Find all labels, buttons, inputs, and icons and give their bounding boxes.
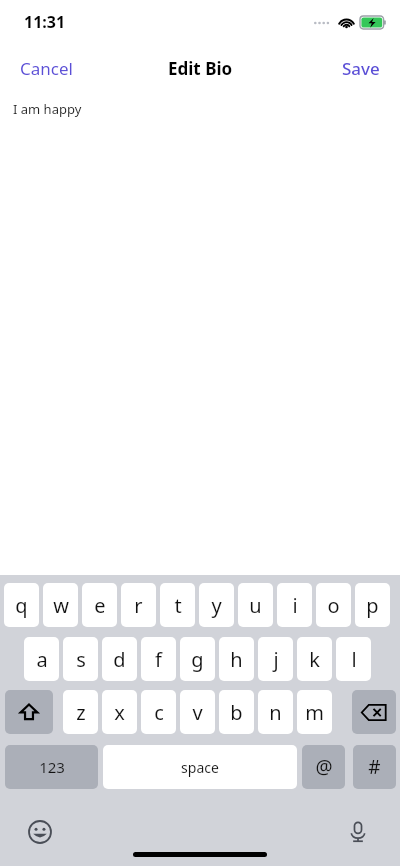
button[interactable]: f (141, 637, 176, 681)
button[interactable]: l (336, 637, 371, 681)
staticText: I am happy (13, 100, 82, 118)
staticText: w (53, 592, 69, 619)
button[interactable]: q (4, 583, 39, 627)
staticText: h (230, 646, 243, 673)
button[interactable]: I am happy (0, 100, 400, 130)
staticText: f (155, 646, 162, 673)
button[interactable]: x (102, 690, 137, 734)
staticText: y (211, 592, 222, 619)
button[interactable]: j (258, 637, 293, 681)
button[interactable]: 123 (5, 745, 98, 789)
staticText: c (154, 699, 164, 726)
button[interactable]: d (102, 637, 137, 681)
staticText: k (309, 646, 320, 673)
staticText: @ (315, 754, 333, 780)
button[interactable]: @ (302, 745, 345, 789)
button[interactable]: u (238, 583, 273, 627)
staticText: d (113, 646, 126, 673)
staticText: r (134, 592, 143, 619)
staticText: z (76, 699, 86, 726)
staticText: s (76, 646, 86, 673)
staticText: t (174, 592, 182, 619)
staticText: j (273, 646, 279, 673)
button[interactable]: r (121, 583, 156, 627)
staticText: e (94, 592, 106, 619)
staticText: o (327, 592, 340, 619)
staticText: l (351, 646, 357, 673)
button[interactable]: s (63, 637, 98, 681)
button[interactable]: Dictation (336, 810, 380, 854)
button[interactable]: w (43, 583, 78, 627)
staticText: a (36, 646, 48, 673)
button[interactable]: e (82, 583, 117, 627)
button[interactable]: Shift (5, 690, 53, 734)
button[interactable]: v (180, 690, 215, 734)
staticText: n (269, 699, 282, 726)
button[interactable]: g (180, 637, 215, 681)
button[interactable]: space (103, 745, 297, 789)
staticText: Save (342, 57, 380, 80)
button[interactable]: y (199, 583, 234, 627)
button[interactable]: p (355, 583, 390, 627)
staticText: i (292, 592, 298, 619)
staticText: 11:31 (24, 11, 66, 33)
staticText: Edit Bio (168, 57, 233, 80)
button[interactable]: k (297, 637, 332, 681)
button[interactable]: # (353, 745, 396, 789)
button[interactable]: Save (330, 51, 392, 86)
staticText: space (181, 758, 219, 777)
button[interactable]: m (297, 690, 332, 734)
staticText: p (366, 592, 379, 619)
button[interactable]: a (24, 637, 59, 681)
staticText: 123 (39, 757, 65, 777)
button[interactable]: t (160, 583, 195, 627)
staticText: g (191, 646, 204, 673)
button[interactable]: b (219, 690, 254, 734)
button[interactable]: c (141, 690, 176, 734)
staticText: m (305, 699, 324, 726)
button[interactable]: n (258, 690, 293, 734)
staticText: Cancel (20, 57, 73, 80)
button[interactable]: i (277, 583, 312, 627)
button[interactable]: o (316, 583, 351, 627)
button[interactable]: Emoji (18, 810, 62, 854)
staticText: # (368, 754, 381, 780)
staticText: q (15, 592, 28, 619)
staticText: x (114, 699, 125, 726)
button[interactable]: h (219, 637, 254, 681)
button[interactable]: Cancel (8, 51, 85, 86)
button[interactable]: Backspace (352, 690, 396, 734)
button[interactable]: z (63, 690, 98, 734)
staticText: u (249, 592, 262, 619)
staticText: v (192, 699, 203, 726)
staticText: b (230, 699, 243, 726)
